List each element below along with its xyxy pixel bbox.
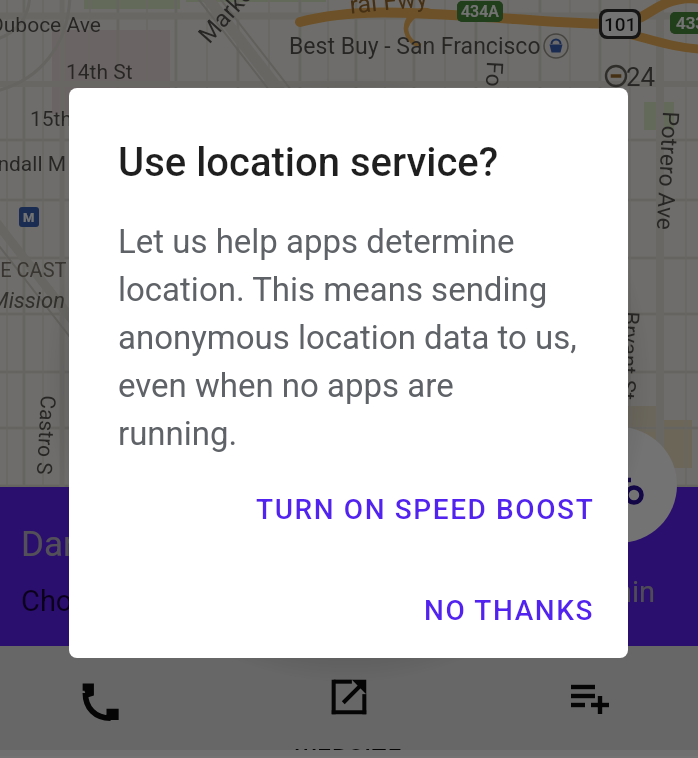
staticText: Potrero Ave bbox=[651, 111, 684, 231]
staticText: 433 bbox=[676, 13, 698, 33]
staticText: ral Fwy bbox=[348, 0, 430, 20]
staticText: Market bbox=[193, 0, 264, 49]
staticText: 101 bbox=[604, 13, 637, 35]
staticText: 434A bbox=[461, 2, 499, 21]
staticText: Castro S bbox=[31, 395, 60, 476]
staticText: Fo bbox=[480, 61, 508, 88]
staticText: Mission bbox=[0, 288, 65, 314]
button[interactable]: Dandelion Chocolate bbox=[0, 487, 698, 646]
staticText: Use location service? bbox=[118, 139, 499, 186]
staticText: 15th bbox=[30, 107, 73, 132]
staticText: Duboce Ave bbox=[0, 13, 101, 38]
staticText: andall M bbox=[0, 152, 67, 177]
button[interactable]: Directions bbox=[561, 427, 677, 543]
staticText: NO THANKS bbox=[424, 594, 595, 627]
staticText: Chocolate shop bbox=[21, 584, 223, 618]
staticText: Best Buy - San Francisco bbox=[289, 33, 541, 60]
button[interactable]: NO THANKS bbox=[391, 581, 628, 640]
staticText: WEBSITE bbox=[295, 744, 403, 750]
staticText: TURN ON SPEED BOOST bbox=[256, 493, 595, 526]
button[interactable]: Open website bbox=[247, 646, 451, 750]
staticText: 9 min bbox=[583, 575, 655, 609]
staticText: HE CAST bbox=[0, 258, 67, 281]
button[interactable]: Call bbox=[0, 646, 204, 750]
staticText: 24 bbox=[626, 62, 656, 92]
button[interactable]: TURN ON SPEED BOOST bbox=[223, 480, 628, 539]
staticText: M bbox=[23, 210, 35, 225]
staticText: Bryant St bbox=[613, 311, 644, 401]
staticText: 14th St bbox=[66, 60, 133, 85]
button[interactable]: Save bbox=[487, 646, 691, 750]
staticText: Let us help apps determine location. Thi… bbox=[118, 222, 580, 453]
staticText: Dandelion Chocolate bbox=[21, 524, 344, 565]
